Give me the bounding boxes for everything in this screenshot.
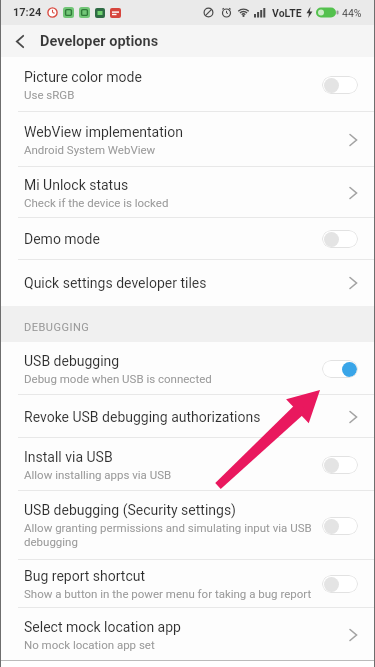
- staticText: DEBUGGING: [24, 321, 90, 334]
- staticText: Revoke USB debugging authorizations: [24, 409, 261, 425]
- button[interactable]: Revoke USB debugging authorizations: [0, 395, 375, 438]
- button[interactable]: [322, 230, 358, 248]
- staticText: Allow granting permissions and simulatin…: [24, 521, 312, 549]
- button[interactable]: Bug report shortcut: [0, 560, 375, 608]
- button[interactable]: Picture color mode: [0, 57, 375, 112]
- staticText: Demo mode: [24, 231, 100, 247]
- button[interactable]: USB debugging: [0, 342, 375, 395]
- staticText: Install via USB: [24, 449, 113, 465]
- button[interactable]: WebView implementation: [0, 112, 375, 167]
- button[interactable]: [322, 456, 358, 474]
- staticText: Use sRGB: [24, 88, 75, 101]
- staticText: Developer options: [40, 33, 159, 50]
- staticText: USB debugging (Security settings): [24, 502, 236, 518]
- staticText: WebView implementation: [24, 124, 183, 140]
- button[interactable]: Demo mode: [0, 218, 375, 260]
- staticText: VoLTE: [272, 7, 302, 19]
- button[interactable]: Quick settings developer tiles: [0, 260, 375, 306]
- staticText: Bug report shortcut: [24, 568, 146, 584]
- staticText: Android System WebView: [24, 143, 156, 156]
- staticText: Check if the device is locked: [24, 196, 169, 209]
- staticText: 17:24: [13, 6, 42, 19]
- staticText: Debug mode when USB is connected: [24, 372, 212, 385]
- staticText: 44%: [342, 7, 362, 19]
- staticText: Picture color mode: [24, 69, 142, 85]
- button[interactable]: [322, 76, 358, 94]
- button[interactable]: Select mock location app: [0, 608, 375, 661]
- staticText: USB debugging: [24, 353, 120, 369]
- button[interactable]: Install via USB: [0, 438, 375, 491]
- button[interactable]: Mi Unlock status: [0, 167, 375, 218]
- button[interactable]: [322, 517, 358, 535]
- button[interactable]: [322, 575, 358, 593]
- staticText: Allow installing apps via USB: [24, 468, 172, 481]
- staticText: Show a button in the power menu for taki…: [24, 587, 312, 600]
- staticText: Select mock location app: [24, 619, 181, 635]
- staticText: No mock location app set: [24, 638, 155, 651]
- button[interactable]: USB debugging (Security settings): [0, 491, 375, 560]
- staticText: Quick settings developer tiles: [24, 275, 207, 291]
- staticText: Mi Unlock status: [24, 177, 129, 193]
- button[interactable]: [16, 29, 40, 53]
- button[interactable]: [322, 360, 358, 378]
